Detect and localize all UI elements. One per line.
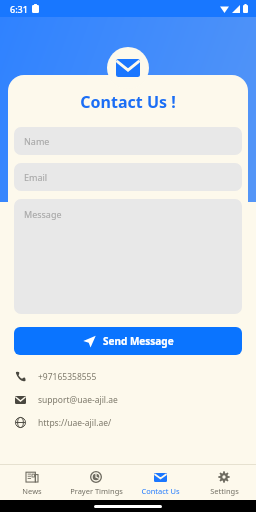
button[interactable]: Name <box>14 127 242 155</box>
button[interactable]: support@uae-ajil.ae <box>14 392 248 407</box>
staticText: Name <box>24 135 50 147</box>
staticText: Contact Us <box>141 486 180 496</box>
other: Prayer Timings <box>90 471 102 483</box>
staticText: Email <box>24 171 48 183</box>
button[interactable]: Email <box>14 163 242 191</box>
button[interactable]: Message <box>14 199 242 314</box>
other: Contact Us <box>154 473 167 482</box>
staticText: Contact Us ! <box>8 91 248 113</box>
staticText: Prayer Timings <box>70 486 123 496</box>
button[interactable]: https://uae-ajil.ae/ <box>14 415 248 430</box>
staticText: 6:31 <box>10 3 28 15</box>
staticText: support@uae-ajil.ae <box>38 394 118 406</box>
button[interactable]: Contact Us <box>128 465 192 500</box>
button[interactable]: Prayer Timings <box>64 465 128 500</box>
button[interactable]: News <box>0 465 64 500</box>
other: Settings <box>218 471 230 483</box>
staticText: +97165358555 <box>38 371 97 383</box>
button[interactable]: Settings <box>192 465 256 500</box>
other: News <box>26 471 38 483</box>
staticText: Message <box>24 208 62 220</box>
staticText: https://uae-ajil.ae/ <box>38 417 112 429</box>
staticText: News <box>22 486 42 496</box>
button[interactable]: Send Message <box>14 327 242 355</box>
button[interactable]: +97165358555 <box>14 369 248 384</box>
staticText: Settings <box>210 486 239 496</box>
staticText: Send Message <box>103 334 174 348</box>
